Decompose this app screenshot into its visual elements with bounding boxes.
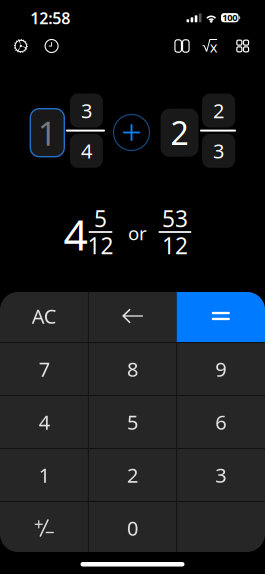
button[interactable]: More bbox=[228, 32, 258, 60]
staticText: 1 bbox=[38, 111, 57, 155]
staticText: 5 bbox=[127, 409, 138, 435]
staticText: 6 bbox=[215, 409, 226, 435]
button[interactable]: Equals bbox=[177, 290, 265, 342]
button[interactable]: Backspace bbox=[88, 290, 177, 342]
staticText: 100 bbox=[222, 11, 237, 24]
staticText: 1 bbox=[39, 462, 50, 488]
staticText: 2 bbox=[213, 97, 224, 124]
staticText: x bbox=[210, 37, 218, 56]
button[interactable]: Calculator mode bbox=[6, 32, 36, 60]
staticText: 8 bbox=[127, 356, 138, 382]
staticText: 12:58 bbox=[30, 7, 70, 29]
staticText: 0 bbox=[127, 515, 138, 541]
staticText: or bbox=[128, 221, 147, 245]
button[interactable]: 8 bbox=[88, 343, 177, 395]
button[interactable]: 0 bbox=[88, 502, 177, 554]
button[interactable]: 7 bbox=[0, 343, 88, 395]
staticText: 2 bbox=[171, 111, 189, 154]
staticText: 5 bbox=[94, 203, 107, 233]
button[interactable]: 4 bbox=[0, 396, 88, 448]
staticText: 7 bbox=[39, 356, 50, 382]
staticText: 2 bbox=[127, 462, 138, 488]
button[interactable]: Square root bbox=[195, 32, 225, 60]
staticText: 4 bbox=[63, 206, 87, 262]
button[interactable]: 2 bbox=[88, 449, 177, 501]
button[interactable]: 6 bbox=[177, 396, 265, 448]
staticText: AC bbox=[32, 303, 57, 329]
button[interactable]: Plus bbox=[113, 114, 149, 150]
button[interactable] bbox=[177, 502, 265, 554]
staticText: 4 bbox=[81, 137, 92, 164]
button[interactable]: 9 bbox=[177, 343, 265, 395]
button[interactable]: AC bbox=[0, 290, 88, 342]
staticText: 3 bbox=[213, 137, 224, 164]
staticText: 12 bbox=[87, 230, 113, 260]
staticText: 4 bbox=[39, 409, 50, 435]
staticText: 3 bbox=[81, 97, 92, 124]
button[interactable]: 5 bbox=[88, 396, 177, 448]
button[interactable]: Reference bbox=[167, 32, 197, 60]
button[interactable]: 1 bbox=[0, 449, 88, 501]
staticText: 12 bbox=[162, 230, 188, 260]
button[interactable]: History bbox=[37, 32, 67, 60]
button[interactable]: Plus minus bbox=[0, 502, 88, 554]
staticText: 53 bbox=[162, 203, 188, 233]
button[interactable]: 3 bbox=[177, 449, 265, 501]
staticText: 3 bbox=[215, 462, 226, 488]
staticText: 9 bbox=[215, 356, 226, 382]
